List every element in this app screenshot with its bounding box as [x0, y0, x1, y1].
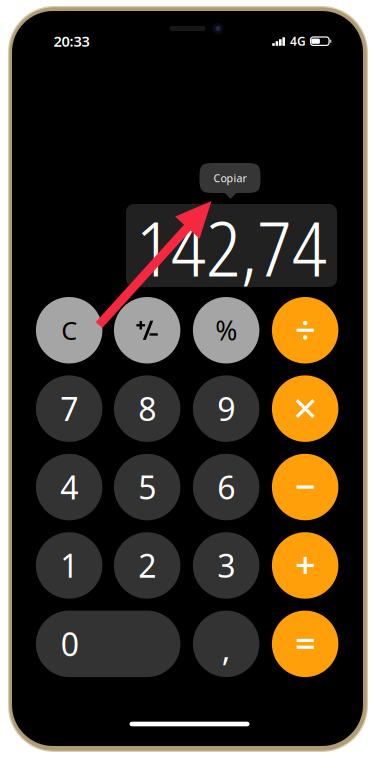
button[interactable]: ,: [193, 611, 259, 677]
staticText: 142,74: [136, 195, 327, 299]
button[interactable]: Divide: [272, 297, 338, 363]
staticText: C: [61, 313, 77, 347]
button[interactable]: 3: [193, 532, 259, 599]
staticText: 7: [60, 387, 78, 430]
staticText: %: [215, 312, 237, 348]
button[interactable]: Multiply: [272, 375, 338, 442]
button[interactable]: C: [36, 297, 102, 363]
button[interactable]: 5: [114, 454, 180, 520]
button[interactable]: 7: [36, 375, 102, 442]
button[interactable]: 9: [193, 375, 259, 442]
button[interactable]: 8: [114, 375, 180, 442]
staticText: 8: [138, 387, 156, 430]
button[interactable]: %: [193, 297, 259, 363]
staticText: 4: [60, 466, 78, 508]
button[interactable]: 2: [114, 532, 180, 599]
staticText: 4G: [290, 33, 306, 49]
staticText: Copiar: [213, 171, 246, 185]
staticText: 9: [217, 387, 235, 430]
button[interactable]: 6: [193, 454, 259, 520]
button[interactable]: 0: [36, 611, 180, 677]
staticText: 20:33: [53, 31, 89, 51]
staticText: ,: [222, 628, 231, 670]
staticText: 2: [138, 544, 156, 587]
button[interactable]: Plus: [272, 532, 338, 599]
button[interactable]: Minus: [272, 454, 338, 520]
button[interactable]: Plus minus: [114, 297, 180, 363]
button[interactable]: Equals: [272, 611, 338, 677]
staticText: 1: [60, 544, 78, 587]
staticText: 5: [138, 466, 156, 508]
staticText: 0: [61, 623, 79, 665]
button[interactable]: 1: [36, 532, 102, 599]
button[interactable]: 4: [36, 454, 102, 520]
button[interactable]: Copiar: [199, 163, 260, 193]
staticText: 3: [217, 544, 235, 587]
staticText: 6: [217, 466, 235, 508]
